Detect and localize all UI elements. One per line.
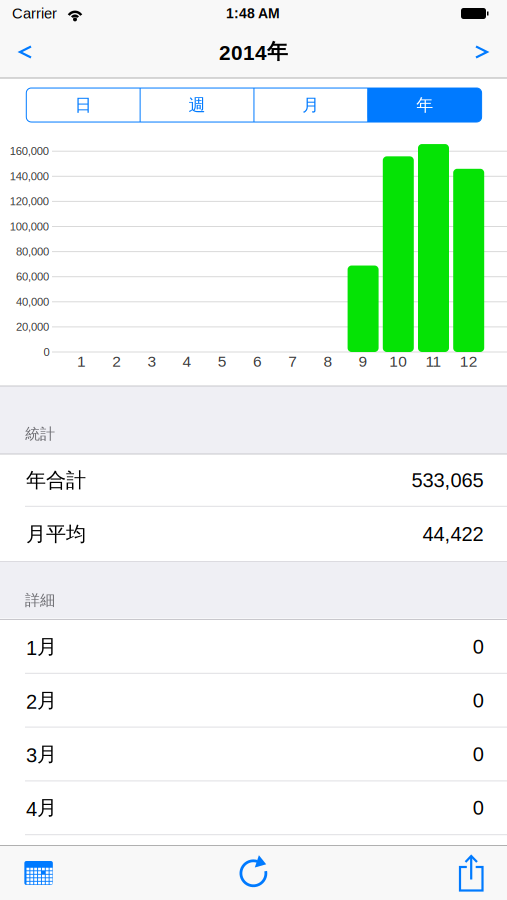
staticText: 0	[473, 743, 484, 765]
staticText: 4	[183, 353, 192, 370]
staticText: 2014年	[219, 38, 288, 65]
staticText: 533,065	[411, 469, 483, 492]
staticText: Carrier	[12, 5, 57, 22]
staticText: 年合計	[26, 468, 86, 493]
staticText: 統計	[25, 424, 55, 443]
staticText: 12	[460, 353, 478, 370]
staticText: 120,000	[10, 195, 49, 208]
staticText: 8	[323, 353, 332, 370]
staticText: 0	[473, 636, 484, 658]
staticText: 6	[253, 353, 262, 370]
staticText: 0	[473, 797, 484, 819]
staticText: 3月	[26, 741, 57, 767]
staticText: 40,000	[16, 295, 49, 308]
staticText: 60,000	[16, 270, 49, 283]
staticText: 2	[112, 353, 121, 370]
staticText: 週	[188, 94, 205, 116]
staticText: 1:48 AM	[226, 6, 280, 21]
staticText: 100,000	[10, 220, 49, 233]
staticText: 80,000	[16, 245, 49, 258]
staticText: 20,000	[16, 321, 49, 333]
staticText: 44,422	[423, 523, 484, 545]
staticText: 10	[389, 353, 407, 370]
staticText: 1	[77, 353, 86, 370]
staticText: 詳細	[25, 591, 55, 610]
staticText: 0	[473, 689, 484, 712]
staticText: 3	[147, 353, 156, 370]
staticText: 11	[425, 353, 441, 370]
staticText: 月	[302, 94, 319, 116]
staticText: 年	[416, 94, 433, 116]
staticText: 2月	[26, 688, 57, 713]
staticText: 月平均	[26, 521, 86, 547]
staticText: 1月	[26, 634, 57, 659]
staticText: 7	[288, 353, 297, 370]
staticText: 4月	[26, 795, 57, 820]
staticText: 5	[218, 353, 227, 370]
staticText: 9	[359, 353, 368, 370]
staticText: 140,000	[10, 170, 49, 182]
staticText: 160,000	[10, 145, 49, 157]
staticText: 日	[75, 94, 92, 116]
staticText: 0	[43, 346, 49, 358]
